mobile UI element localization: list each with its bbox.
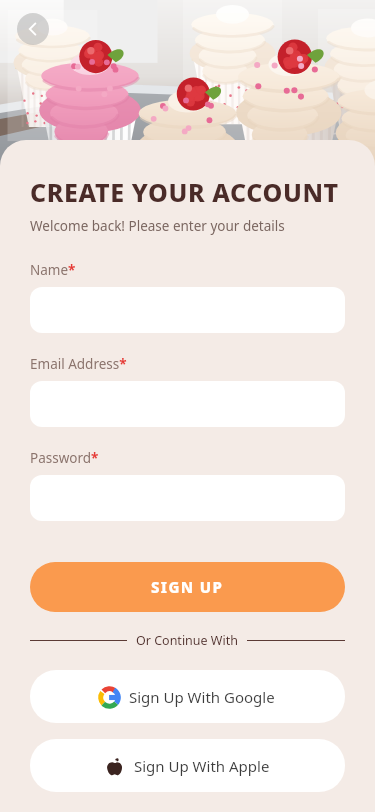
staticText: CREATE YOUR ACCOUNT <box>30 175 339 209</box>
staticText: Sign Up With Apple <box>134 756 270 776</box>
button[interactable]: Sign Up With Apple <box>30 739 345 792</box>
button[interactable]: Sign Up With Google <box>30 670 345 723</box>
staticText: Password* <box>30 449 99 467</box>
button[interactable]: Back <box>17 13 49 45</box>
staticText: Name* <box>30 261 76 279</box>
staticText: Sign Up With Google <box>129 687 275 707</box>
staticText: SIGN UP <box>151 577 224 597</box>
button[interactable]: SIGN UP <box>30 562 345 612</box>
staticText: Email Address* <box>30 355 127 373</box>
staticText: Or Continue With <box>136 632 238 649</box>
staticText: Welcome back! Please enter your details <box>30 217 285 235</box>
